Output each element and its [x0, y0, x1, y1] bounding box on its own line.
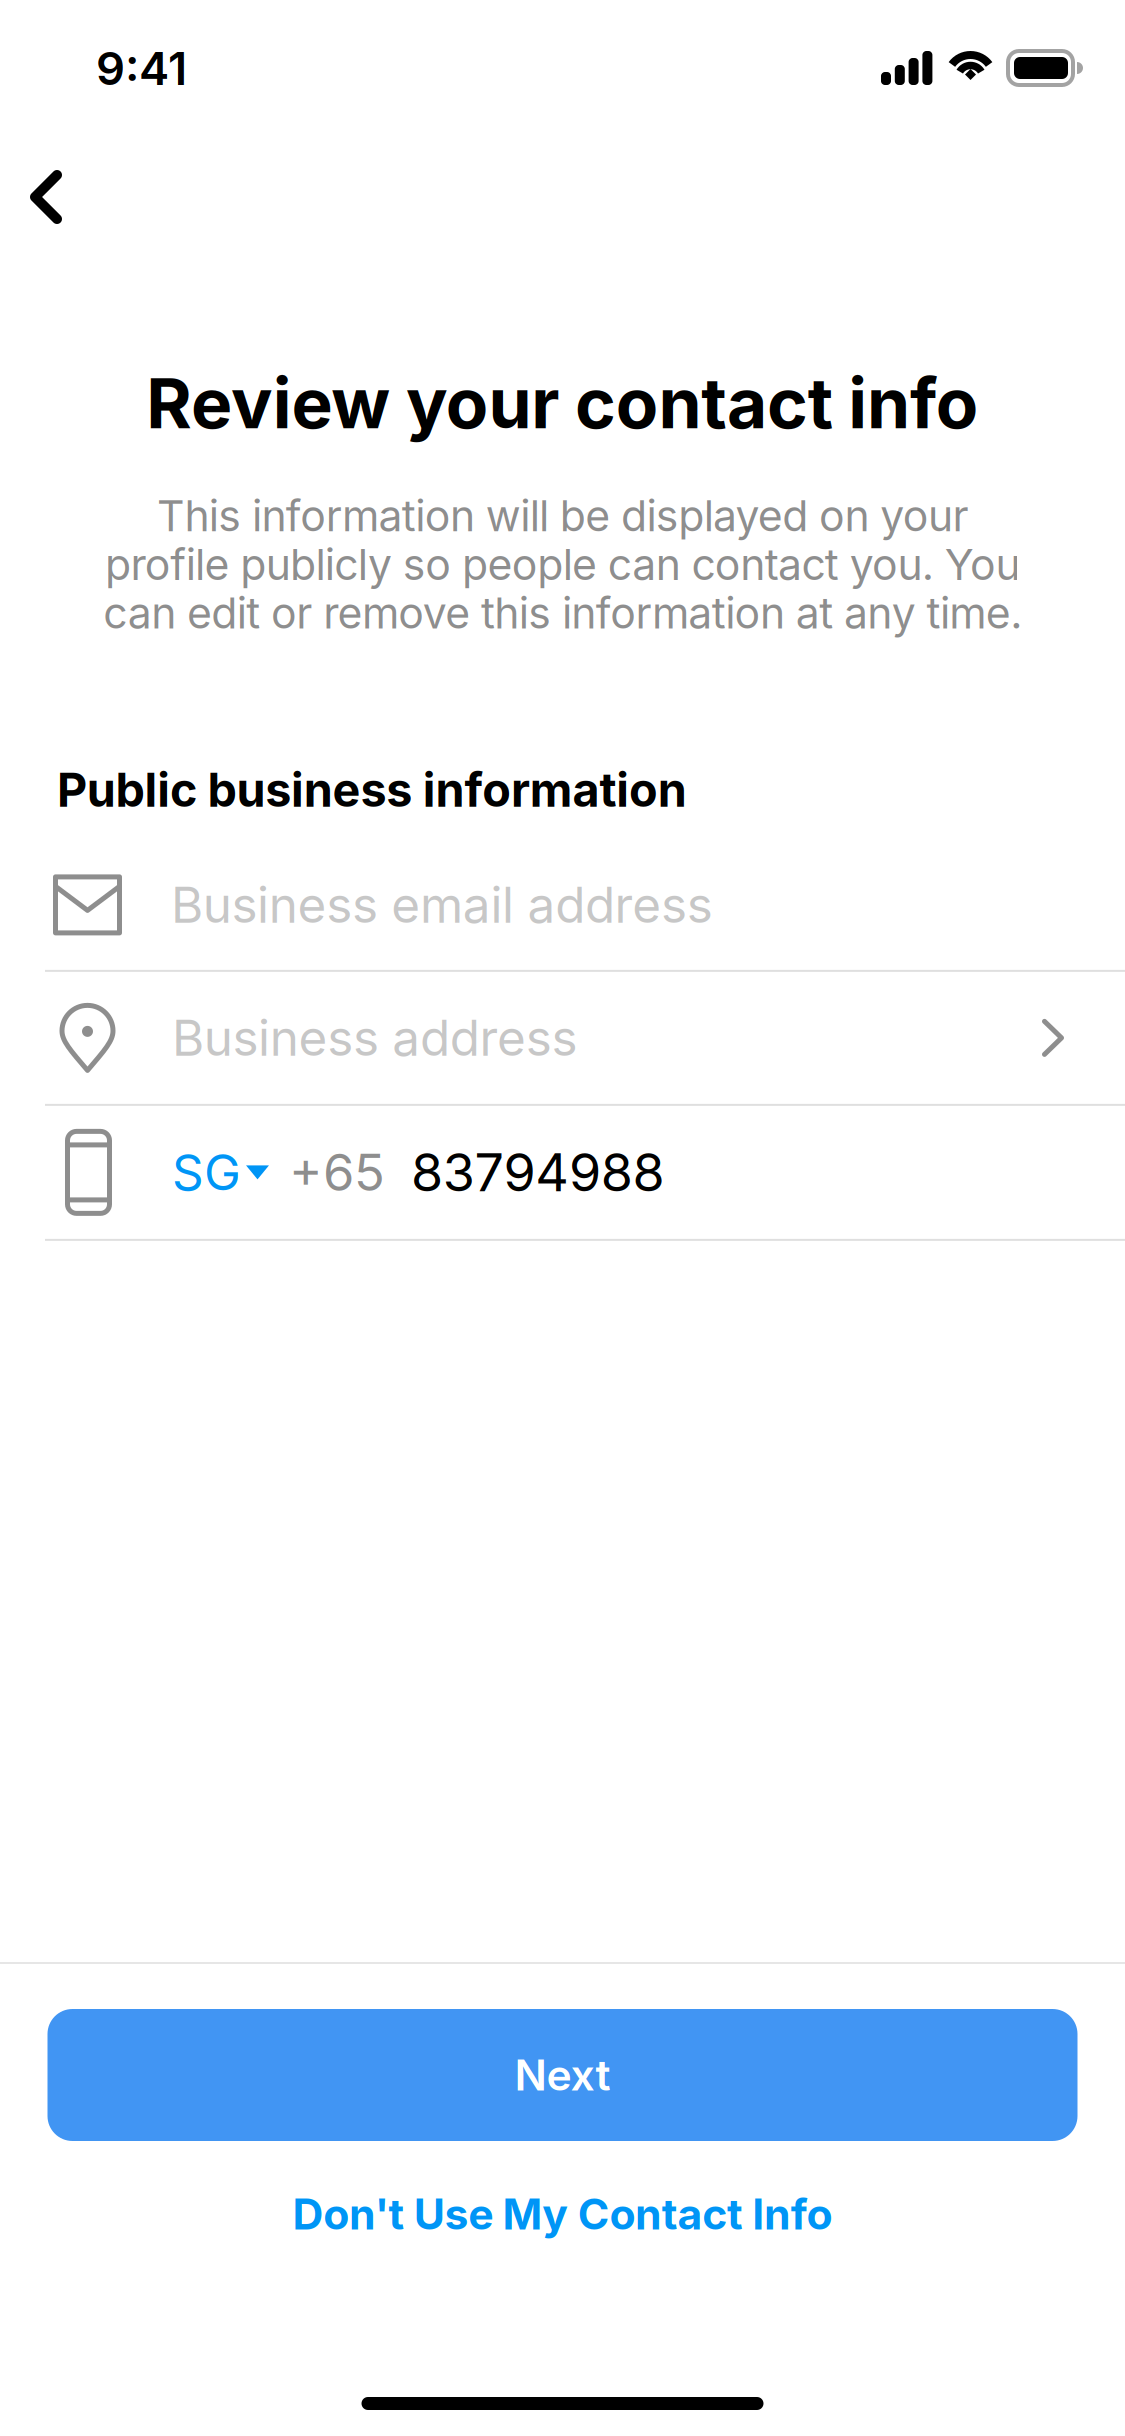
staticText: Review your contact info — [146, 361, 979, 445]
button[interactable]: Next — [47, 2009, 1077, 2141]
button[interactable]: Business address — [0, 972, 1125, 1104]
staticText: Business address — [172, 1008, 577, 1068]
staticText: Business email address — [171, 875, 713, 935]
button[interactable]: +65 — [289, 1106, 1125, 1239]
staticText: SG — [172, 1142, 241, 1202]
button[interactable]: Back — [0, 132, 1125, 262]
staticText: Public business information — [57, 762, 687, 818]
staticText: Next — [514, 2049, 610, 2101]
staticText: This information will be displayed on yo… — [103, 490, 1022, 639]
staticText: +65 — [289, 1142, 385, 1203]
staticText: 83794988 — [411, 1141, 665, 1204]
staticText: Don't Use My Contact Info — [293, 2188, 832, 2240]
button[interactable]: Select country code — [172, 1106, 269, 1239]
button[interactable]: Business email address — [0, 840, 1125, 970]
button[interactable]: Don't Use My Contact Info — [47, 2177, 1077, 2251]
staticText: 9:41 — [96, 41, 187, 96]
